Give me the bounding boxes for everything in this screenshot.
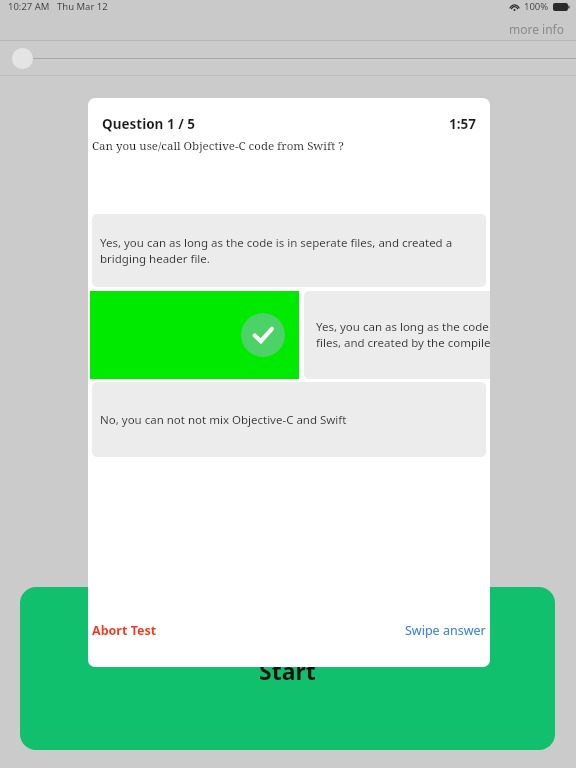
staticText: Yes, you can as long as the code is in s… bbox=[100, 235, 478, 267]
staticText: 1:57 bbox=[449, 115, 476, 133]
button[interactable]: Start bbox=[20, 587, 555, 750]
button[interactable]: Progress slider bbox=[12, 48, 33, 69]
staticText: more info bbox=[509, 21, 564, 37]
button[interactable]: Swipe answer bbox=[395, 616, 490, 645]
button[interactable]: No, you can not not mix Objective-C and … bbox=[92, 382, 486, 457]
button[interactable]: Abort Test bbox=[88, 616, 167, 645]
staticText: 10:27 AM bbox=[8, 0, 50, 13]
staticText: Question 1 / 5 bbox=[102, 115, 195, 133]
button[interactable]: Yes, you can as long as the code is in s… bbox=[88, 291, 490, 379]
staticText: Yes, you can as long as the code is in s… bbox=[316, 319, 490, 351]
staticText: Can you use/call Objective-C code from S… bbox=[92, 138, 344, 154]
staticText: No, you can not not mix Objective-C and … bbox=[100, 412, 347, 428]
staticText: Swipe answer bbox=[405, 622, 486, 639]
staticText: Start bbox=[259, 655, 316, 686]
staticText: 100% bbox=[524, 0, 549, 13]
button[interactable]: more info bbox=[497, 19, 576, 39]
staticText: Thu Mar 12 bbox=[57, 0, 108, 13]
button[interactable]: Yes, you can as long as the code is in s… bbox=[92, 214, 486, 287]
staticText: Abort Test bbox=[92, 622, 157, 639]
